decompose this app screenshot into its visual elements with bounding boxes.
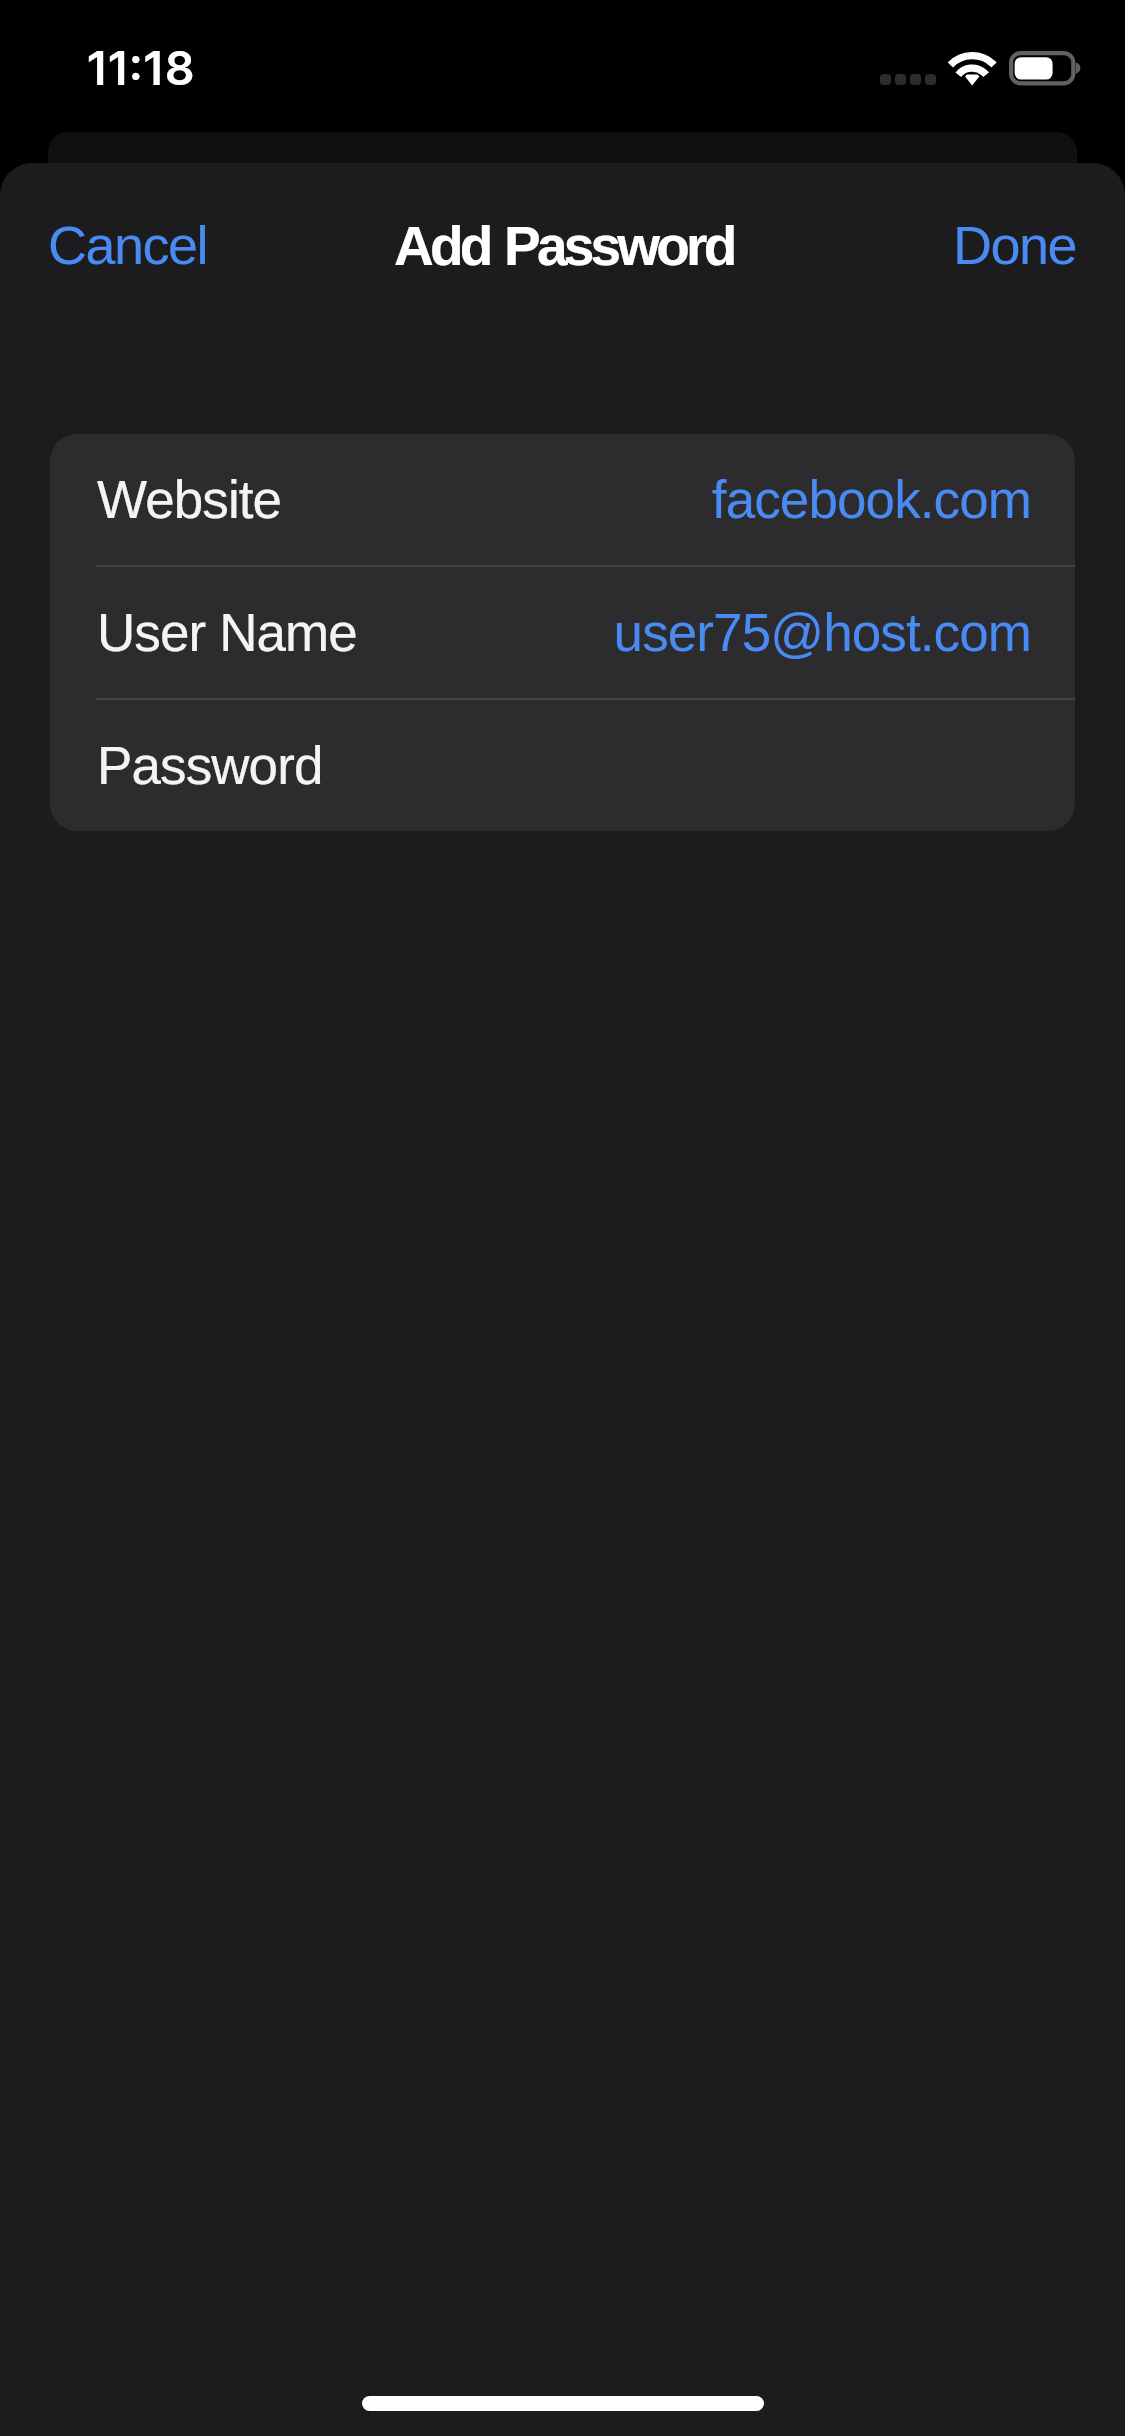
button[interactable]: Password xyxy=(50,700,1075,831)
staticText: facebook.com xyxy=(711,470,1031,529)
staticText: Password xyxy=(504,215,734,276)
button[interactable]: Cancel xyxy=(0,193,248,301)
staticText: Password xyxy=(97,736,323,795)
staticText: 11:18 xyxy=(88,39,198,96)
button[interactable]: Done xyxy=(913,193,1125,301)
staticText: Cancel xyxy=(48,215,208,275)
staticText: Website xyxy=(97,470,282,529)
staticText: Add xyxy=(394,215,490,276)
staticText: Done xyxy=(953,215,1077,275)
button[interactable]: Website xyxy=(50,434,1075,565)
button[interactable]: User Name xyxy=(50,567,1075,698)
staticText: User Name xyxy=(97,603,357,662)
other: Battery xyxy=(1009,51,1084,87)
other: Wi-Fi xyxy=(947,48,997,88)
staticText: user75@host.com xyxy=(613,603,1031,662)
